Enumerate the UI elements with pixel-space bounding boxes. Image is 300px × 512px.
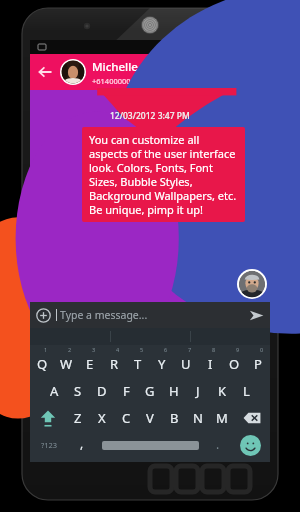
button[interactable]: N bbox=[186, 404, 210, 431]
button[interactable]: Shift bbox=[30, 404, 66, 431]
staticText: 9 bbox=[236, 346, 240, 353]
button[interactable]: 5 bbox=[126, 345, 150, 377]
button[interactable]: 0 bbox=[246, 345, 270, 377]
button[interactable]: ?123 bbox=[30, 431, 69, 459]
staticText: K bbox=[218, 382, 227, 400]
staticText: 0 bbox=[260, 346, 264, 353]
button[interactable]: Type a message... bbox=[60, 308, 242, 322]
staticText: G bbox=[145, 382, 155, 400]
button[interactable]: 6 bbox=[150, 345, 174, 377]
staticText: T bbox=[134, 355, 142, 373]
staticText: H bbox=[169, 382, 179, 400]
staticText: W bbox=[60, 355, 73, 373]
button[interactable] bbox=[60, 59, 86, 85]
button[interactable]: X bbox=[90, 404, 114, 431]
staticText: , bbox=[80, 435, 84, 451]
staticText: J bbox=[196, 382, 200, 400]
staticText: 5 bbox=[140, 346, 144, 353]
staticText: 2 bbox=[68, 346, 72, 353]
staticText: . bbox=[216, 436, 220, 452]
button[interactable]: S bbox=[66, 377, 90, 404]
button[interactable]: Comma bbox=[69, 431, 95, 459]
staticText: 12/03/2012 3:47 PM bbox=[110, 110, 190, 122]
staticText: M bbox=[216, 409, 228, 427]
button[interactable]: Back bbox=[30, 57, 60, 87]
button[interactable]: Emoji bbox=[231, 431, 270, 459]
staticText: Z bbox=[74, 409, 82, 427]
staticText: U bbox=[181, 355, 191, 373]
staticText: P bbox=[254, 355, 262, 373]
staticText: N bbox=[193, 409, 203, 427]
staticText: Q bbox=[37, 355, 48, 373]
staticText: 3 bbox=[92, 346, 96, 353]
staticText: 4 bbox=[116, 346, 120, 353]
staticText: 1 bbox=[44, 346, 48, 353]
staticText: Y bbox=[158, 355, 166, 373]
staticText: C bbox=[122, 409, 131, 427]
staticText: 8 bbox=[212, 346, 216, 353]
staticText: F bbox=[123, 382, 130, 400]
button[interactable]: 3 bbox=[78, 345, 102, 377]
button[interactable]: J bbox=[186, 377, 210, 404]
staticText: D bbox=[97, 382, 107, 400]
staticText: X bbox=[98, 409, 106, 427]
button[interactable]: Z bbox=[66, 404, 90, 431]
button[interactable]: A bbox=[42, 377, 66, 404]
staticText: You can customize all aspects of the use… bbox=[89, 132, 238, 217]
button[interactable]: 4 bbox=[102, 345, 126, 377]
button[interactable]: H bbox=[162, 377, 186, 404]
button[interactable]: K bbox=[210, 377, 234, 404]
staticText: O bbox=[229, 355, 240, 373]
staticText: V bbox=[146, 409, 154, 427]
button[interactable]: Backspace bbox=[234, 404, 270, 431]
button[interactable]: B bbox=[162, 404, 186, 431]
staticText: 7 bbox=[188, 346, 192, 353]
staticText: Michelle bbox=[92, 59, 138, 75]
button[interactable]: 7 bbox=[174, 345, 198, 377]
staticText: E bbox=[86, 355, 94, 373]
staticText: Type a message... bbox=[60, 308, 148, 322]
button[interactable]: V bbox=[138, 404, 162, 431]
staticText: L bbox=[243, 382, 250, 400]
staticText: 6 bbox=[164, 346, 168, 353]
button[interactable]: 9 bbox=[222, 345, 246, 377]
button[interactable]: Period bbox=[205, 431, 231, 459]
button[interactable]: 1 bbox=[30, 345, 54, 377]
button[interactable]: F bbox=[114, 377, 138, 404]
staticText: I bbox=[208, 355, 213, 373]
staticText: A bbox=[50, 382, 59, 400]
button[interactable]: Attach bbox=[30, 302, 56, 328]
staticText: S bbox=[74, 382, 82, 400]
button[interactable]: L bbox=[234, 377, 258, 404]
button[interactable]: M bbox=[210, 404, 234, 431]
button[interactable]: Sender avatar bbox=[237, 269, 267, 299]
staticText: +61400000008 bbox=[92, 76, 144, 86]
staticText: B bbox=[170, 409, 179, 427]
staticText: ?123 bbox=[41, 440, 58, 450]
button[interactable]: D bbox=[90, 377, 114, 404]
button[interactable]: Space bbox=[95, 431, 205, 459]
button[interactable]: G bbox=[138, 377, 162, 404]
button[interactable]: 8 bbox=[198, 345, 222, 377]
button[interactable]: Send bbox=[242, 302, 270, 328]
staticText: R bbox=[110, 355, 119, 373]
button[interactable]: C bbox=[114, 404, 138, 431]
button[interactable]: You can customize all aspects of the use… bbox=[82, 127, 245, 222]
button[interactable]: 2 bbox=[54, 345, 78, 377]
